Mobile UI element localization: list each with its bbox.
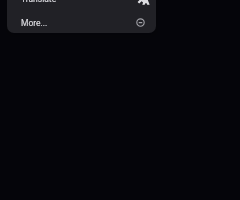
other: More	[135, 16, 147, 28]
staticText: Translate	[21, 0, 57, 4]
button[interactable]: More...	[7, 10, 156, 33]
staticText: More...	[21, 18, 48, 28]
other: Translate	[135, 0, 147, 4]
button[interactable]: Translate	[7, 0, 156, 10]
